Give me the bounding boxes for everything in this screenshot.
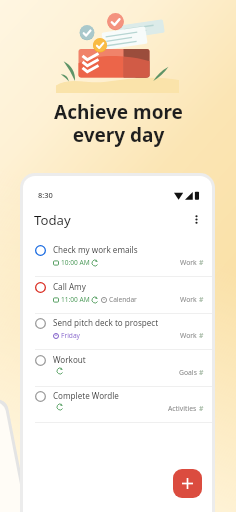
button[interactable]: More options bbox=[186, 209, 206, 229]
staticText: Achieve more every day bbox=[54, 99, 183, 148]
staticText: Friday bbox=[61, 331, 80, 340]
staticText: 10:00 AM bbox=[61, 258, 90, 267]
button[interactable]: Complete Wordle bbox=[23, 386, 212, 423]
staticText: Complete Wordle bbox=[53, 390, 119, 401]
staticText: 11:00 AM bbox=[61, 295, 90, 304]
staticText: Work bbox=[180, 258, 197, 267]
button[interactable]: Workout bbox=[23, 350, 212, 387]
staticText: Work bbox=[180, 295, 197, 304]
staticText: Send pitch deck to prospect bbox=[53, 317, 159, 328]
staticText: Work bbox=[180, 331, 197, 340]
button[interactable]: Add task bbox=[173, 469, 202, 498]
button[interactable]: Today bbox=[34, 209, 94, 231]
staticText: Today bbox=[34, 211, 71, 229]
staticText: # bbox=[199, 368, 204, 377]
button[interactable]: Call Amy bbox=[23, 277, 212, 314]
staticText: Workout bbox=[53, 354, 86, 365]
staticText: # bbox=[199, 258, 204, 267]
staticText: # bbox=[199, 404, 204, 413]
staticText: Call Amy bbox=[53, 281, 86, 292]
staticText: Calendar bbox=[109, 295, 137, 304]
staticText: # bbox=[199, 295, 204, 304]
staticText: Activities bbox=[168, 404, 197, 413]
staticText: Check my work emails bbox=[53, 244, 138, 255]
staticText: Goals bbox=[179, 368, 197, 377]
staticText: # bbox=[199, 331, 204, 340]
button[interactable]: Send pitch deck to prospect bbox=[23, 313, 212, 350]
button[interactable]: Check my work emails bbox=[23, 240, 212, 277]
staticText: 8:30 bbox=[38, 190, 53, 200]
